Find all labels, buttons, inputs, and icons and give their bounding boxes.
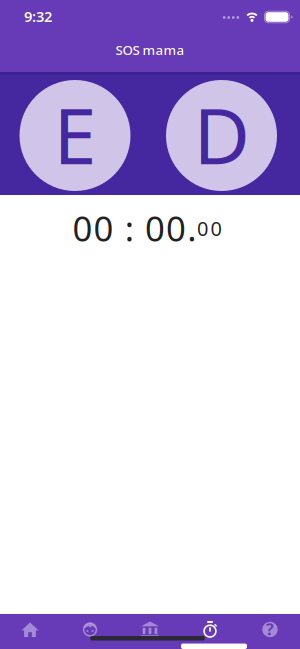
button[interactable]: D [166,80,277,191]
staticText: 00 : 00. [72,205,196,251]
staticText: D [193,83,249,186]
button[interactable]: Hospital [120,614,180,649]
button[interactable]: Help [240,614,300,649]
staticText: SOS mama [115,41,184,59]
staticText: ? [266,618,274,640]
staticText: 00 [197,215,221,242]
button[interactable]: E [19,80,130,191]
button[interactable]: Baby [60,614,120,649]
button[interactable]: Stopwatch [180,614,240,649]
button[interactable]: Home [0,614,60,649]
staticText: 9:32 [24,6,52,26]
staticText: E [53,83,96,186]
